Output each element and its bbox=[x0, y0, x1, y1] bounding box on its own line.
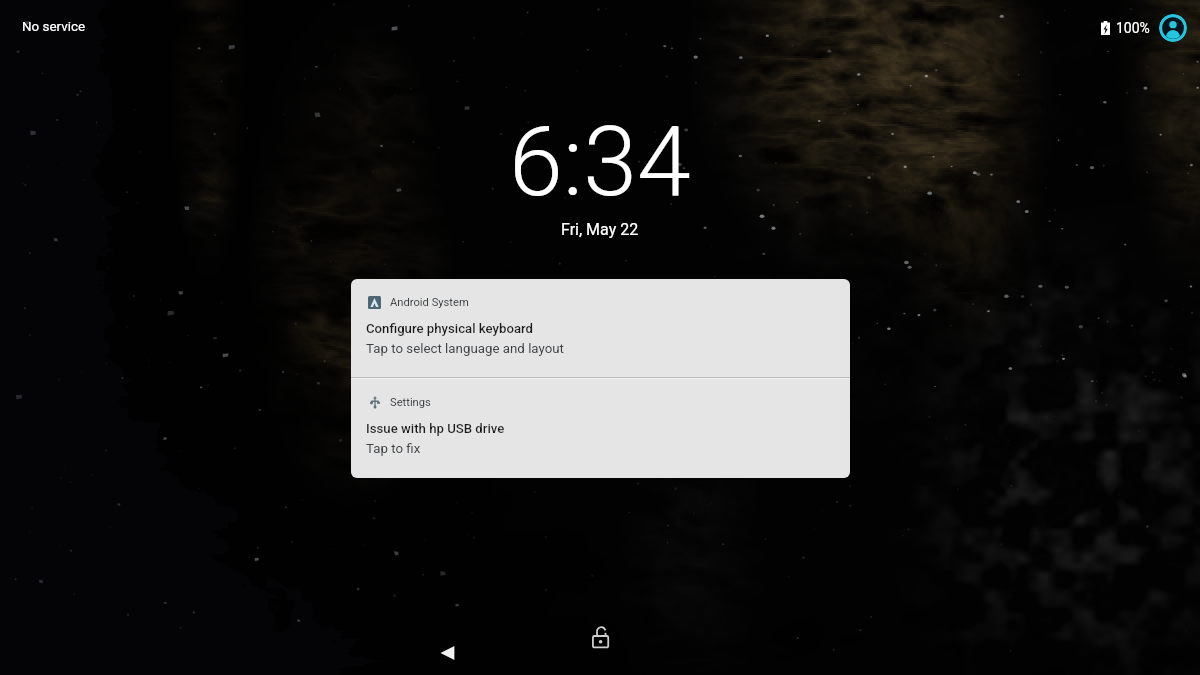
staticText: Settings bbox=[390, 396, 431, 409]
staticText: Tap to fix bbox=[366, 441, 421, 457]
staticText: 100% bbox=[1116, 20, 1150, 36]
staticText: Android System bbox=[390, 296, 469, 309]
staticText: Tap to select language and layout bbox=[366, 341, 564, 357]
button[interactable]: User profile bbox=[1159, 14, 1187, 42]
button[interactable]: Back bbox=[422, 627, 474, 675]
button[interactable]: Android System bbox=[351, 279, 850, 377]
staticText: Issue with hp USB drive bbox=[366, 421, 505, 436]
staticText: Fri, May 22 bbox=[561, 220, 639, 239]
staticText: No service bbox=[22, 19, 86, 35]
staticText: Configure physical keyboard bbox=[366, 321, 533, 336]
staticText: 6:34 bbox=[509, 105, 691, 219]
button[interactable]: Settings bbox=[351, 379, 850, 478]
button[interactable]: Unlock device bbox=[583, 620, 617, 654]
